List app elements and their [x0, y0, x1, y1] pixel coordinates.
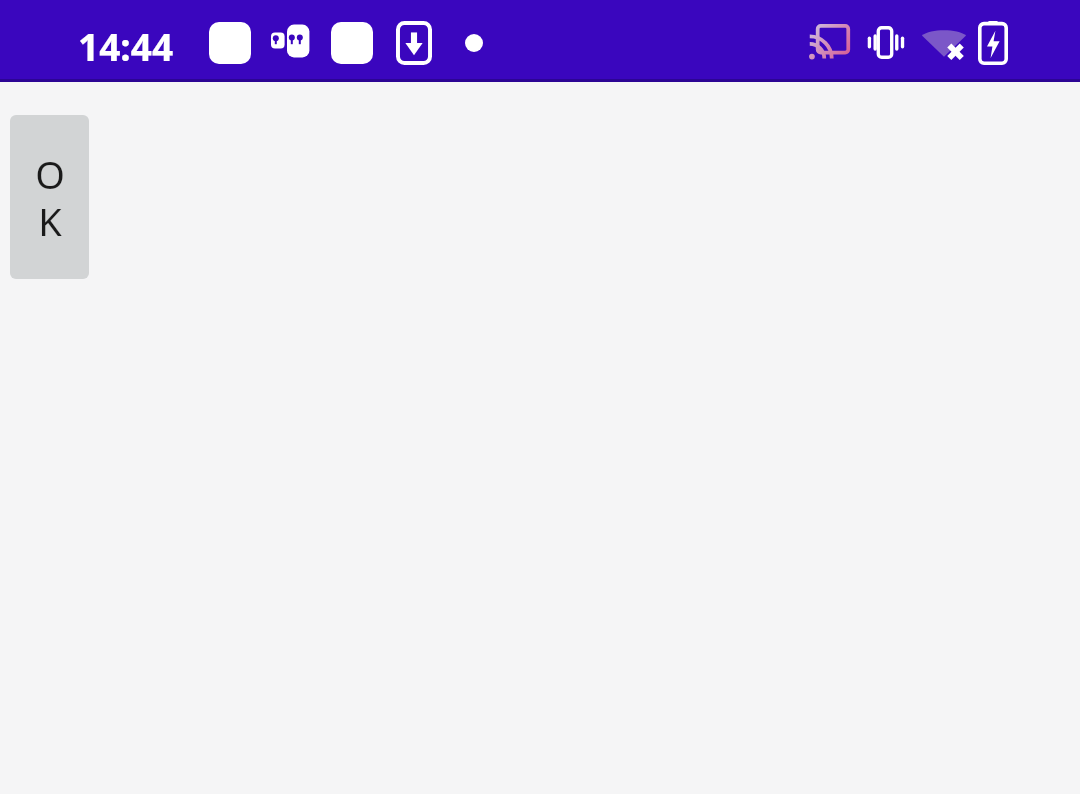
other: More notifications	[465, 34, 483, 52]
other: Cast	[808, 24, 852, 61]
other: Battery charging	[978, 21, 1008, 65]
other: Wi-Fi disconnected	[920, 24, 968, 62]
other: Notification	[331, 22, 373, 64]
other: Download to device	[396, 21, 432, 65]
staticText: 14:44	[78, 21, 174, 71]
staticText: O K	[33, 148, 67, 247]
button[interactable]: O K	[10, 115, 89, 279]
other: Message notification	[271, 23, 311, 63]
other: Vibrate	[861, 24, 909, 61]
other: Notification	[209, 22, 251, 64]
